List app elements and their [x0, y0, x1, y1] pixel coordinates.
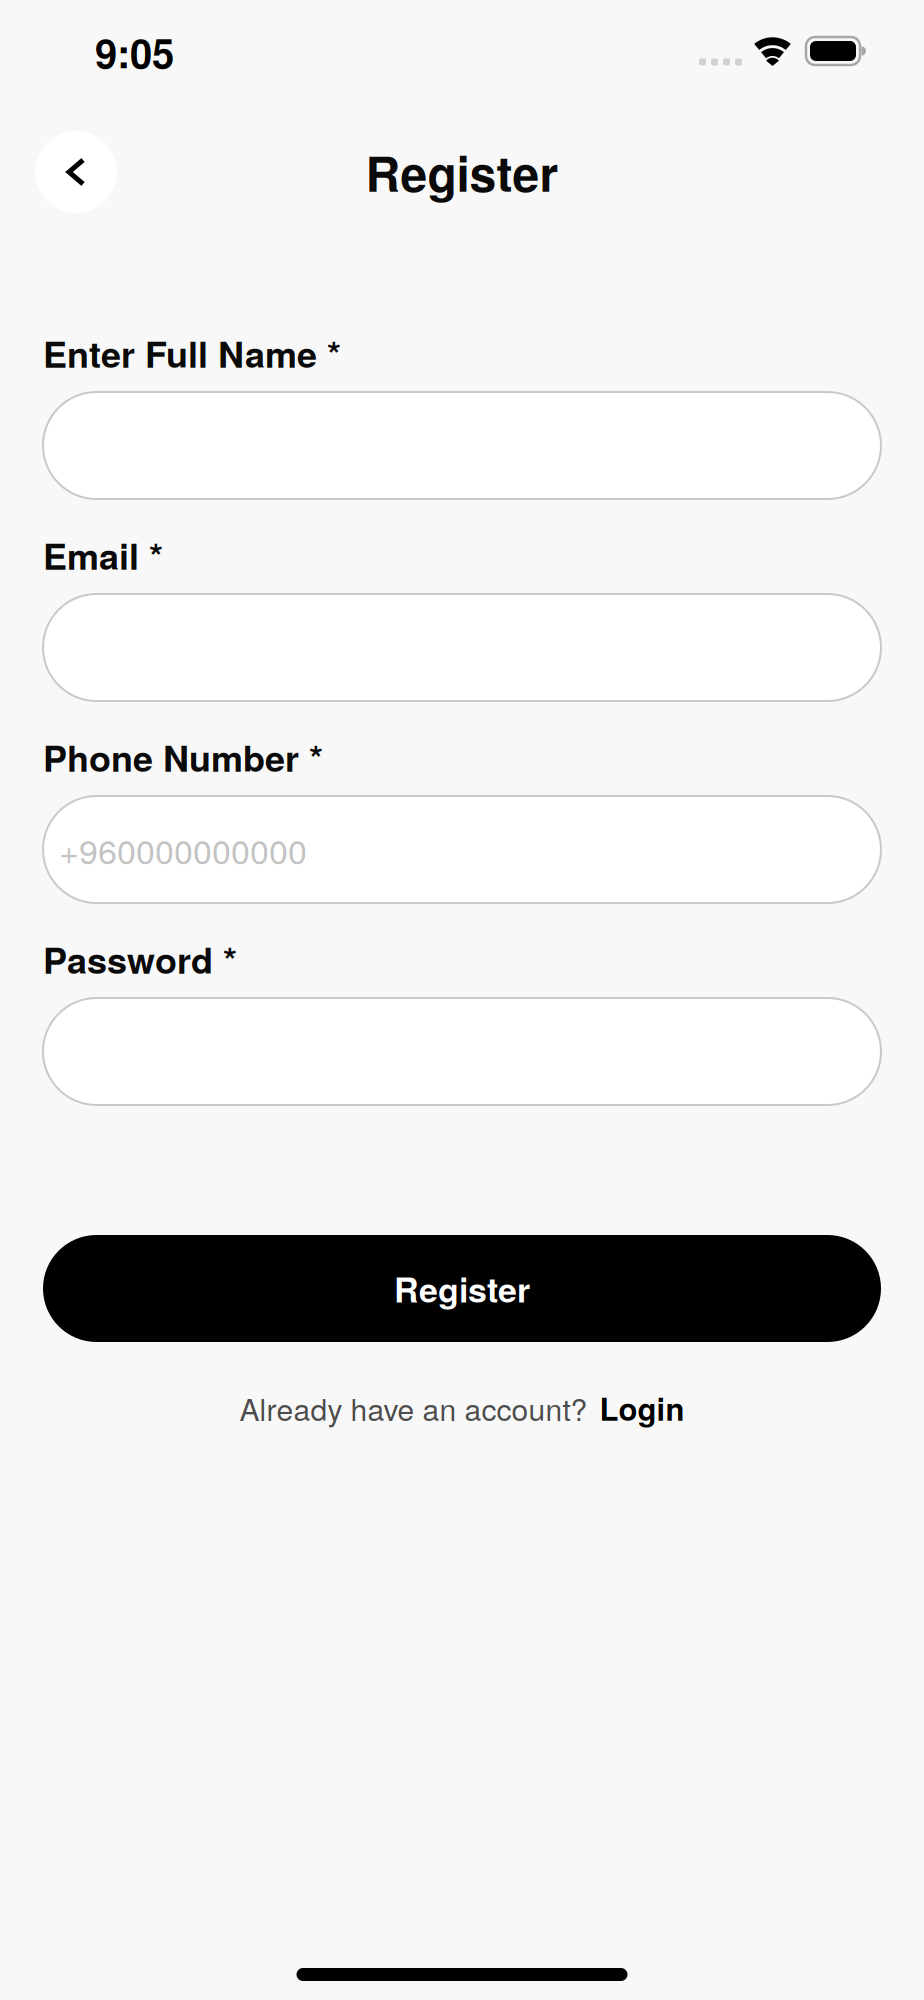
staticText: Register	[394, 1264, 530, 1313]
button[interactable]: Register	[43, 1235, 881, 1342]
staticText: Register	[365, 138, 558, 206]
button[interactable]: Enter Full Name *	[43, 392, 881, 499]
button[interactable]: Email *	[43, 594, 881, 701]
staticText: Password *	[43, 933, 237, 985]
button[interactable]: Password *	[43, 998, 881, 1105]
staticText: Email *	[43, 529, 163, 581]
staticText: +960000000000	[59, 825, 307, 874]
staticText: Enter Full Name *	[43, 327, 341, 379]
staticText: Phone Number *	[43, 731, 323, 783]
button[interactable]: Login	[599, 1386, 684, 1430]
staticText: 9:05	[95, 23, 174, 81]
button[interactable]: Back	[35, 131, 117, 213]
staticText: Already have an account?	[239, 1386, 587, 1429]
button[interactable]: Phone Number *	[43, 796, 881, 903]
staticText: Login	[599, 1386, 684, 1430]
